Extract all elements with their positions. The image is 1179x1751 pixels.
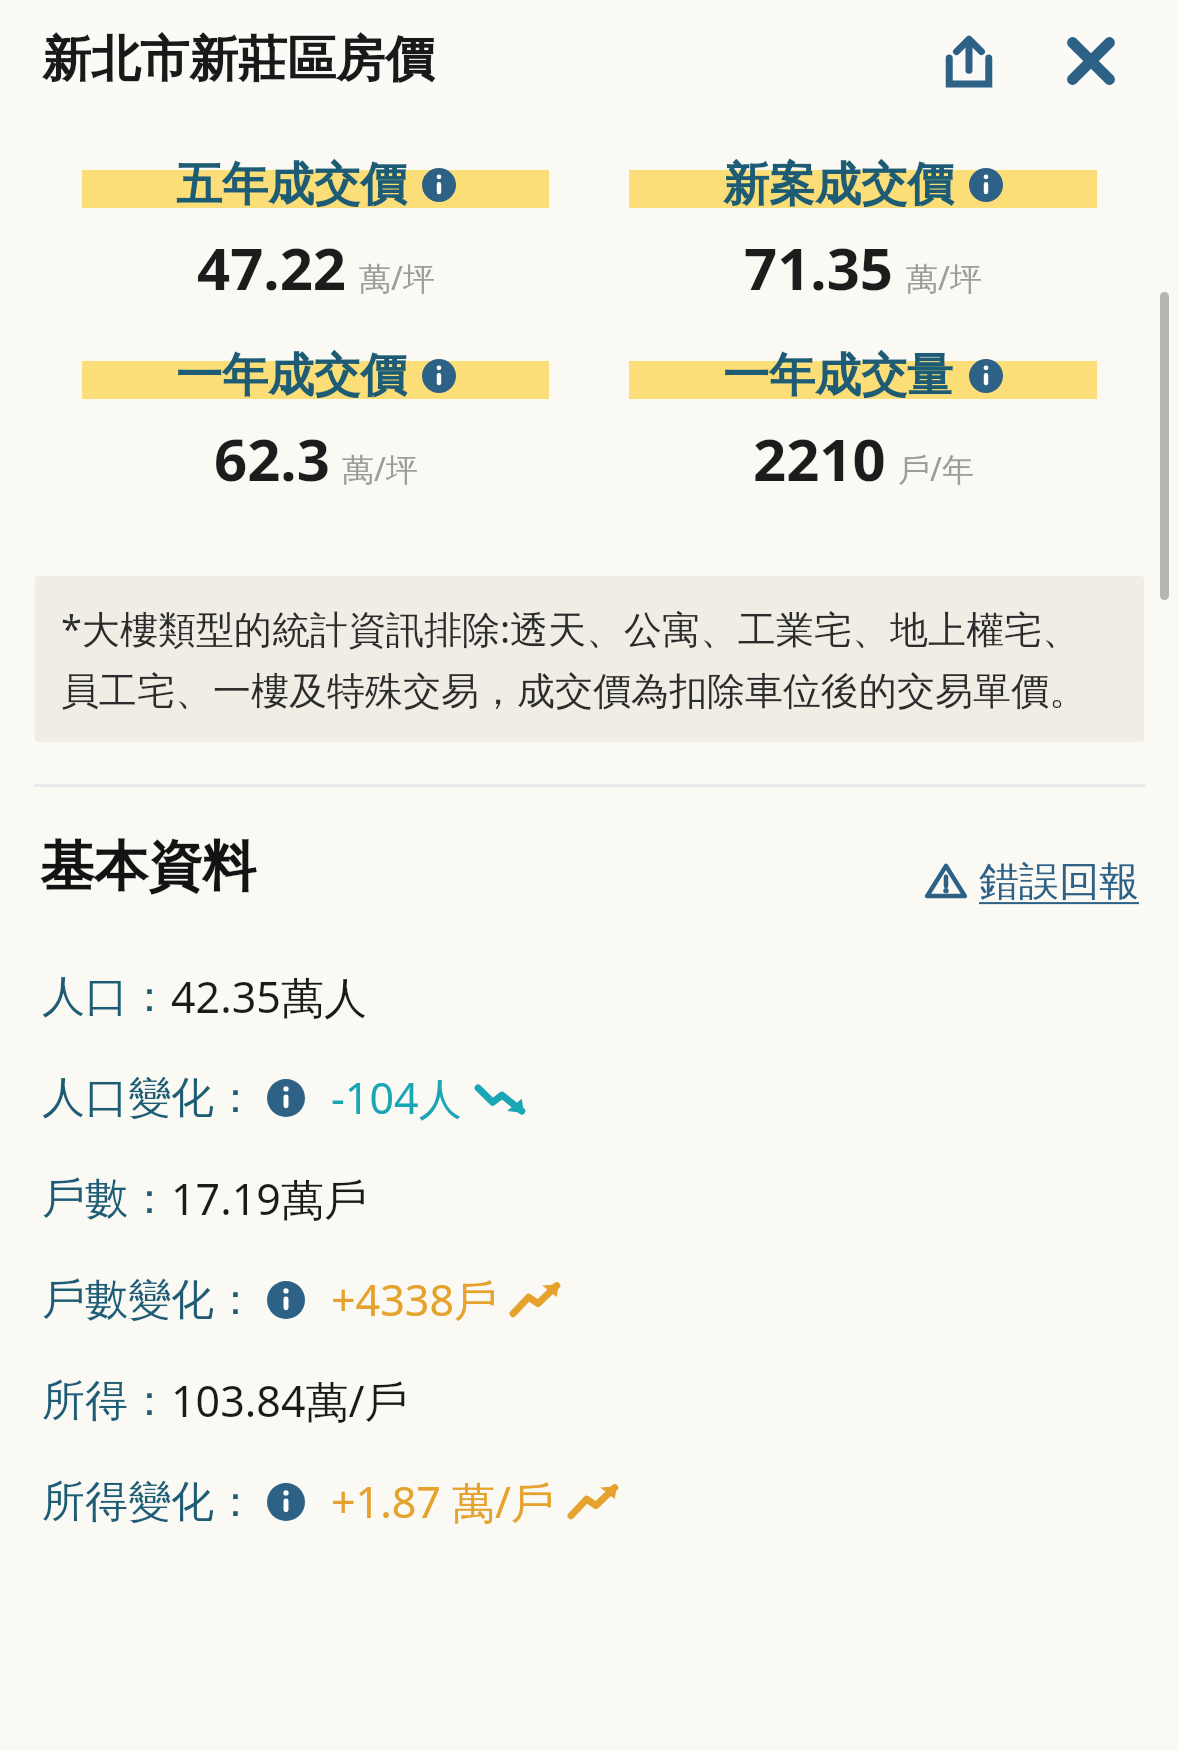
staticText: -104人 [331,1068,462,1127]
button[interactable]: Info [422,359,456,393]
button[interactable]: Info [969,359,1003,393]
button[interactable]: 人口變化 [0,1060,1179,1135]
staticText: 五年成交價 [176,156,406,214]
staticText: 基本資料 [40,833,256,901]
staticText: 新北市新莊區房價 [42,29,434,91]
staticText: +1.87 萬/戶 [331,1472,555,1531]
other: Info [267,1079,305,1117]
button[interactable]: 所得 [0,1363,1179,1438]
staticText: 戶/年 [898,447,974,491]
button[interactable]: 人口 [0,959,1179,1034]
staticText: 戶數變化 [42,1273,214,1327]
button[interactable]: 戶數 [0,1161,1179,1236]
staticText: ： [128,970,171,1024]
staticText: 萬/坪 [906,256,982,300]
staticText: 2210 [753,419,886,498]
staticText: 人口變化 [42,1071,214,1125]
staticText: 人口 [42,970,128,1024]
staticText: 47.22 [197,228,347,307]
staticText: 所得 [42,1374,128,1428]
staticText: *大樓類型的統計資訊排除:透天、公寓、工業宅、地上權宅、員工宅、一樓及特殊交易，… [61,602,1118,716]
staticText: ： [128,1374,171,1428]
button[interactable]: Share [926,18,1012,104]
button[interactable]: Info [969,168,1003,202]
staticText: 71.35 [744,228,894,307]
button[interactable]: Info [422,168,456,202]
staticText: 62.3 [214,419,330,498]
staticText: 錯誤回報 [979,856,1139,906]
staticText: 17.19萬戶 [171,1169,367,1228]
button[interactable]: 錯誤回報 [925,856,1139,906]
staticText: +4338戶 [331,1270,497,1329]
other: Info [267,1483,305,1521]
staticText: 42.35萬人 [171,967,367,1026]
staticText: 萬/坪 [342,447,418,491]
staticText: 戶數 [42,1172,128,1226]
staticText: 新案成交價 [723,156,953,214]
staticText: 一年成交價 [176,347,406,405]
staticText: ： [214,1071,257,1125]
button[interactable]: Close [1048,18,1134,104]
staticText: 一年成交量 [723,347,953,405]
staticText: ： [214,1475,257,1529]
button[interactable]: 戶數變化 [0,1262,1179,1337]
staticText: ： [128,1172,171,1226]
staticText: 103.84萬/戶 [171,1371,408,1430]
staticText: 萬/坪 [359,256,435,300]
staticText: ： [214,1273,257,1327]
other: Info [267,1281,305,1319]
button[interactable]: 所得變化 [0,1464,1179,1539]
staticText: 所得變化 [42,1475,214,1529]
